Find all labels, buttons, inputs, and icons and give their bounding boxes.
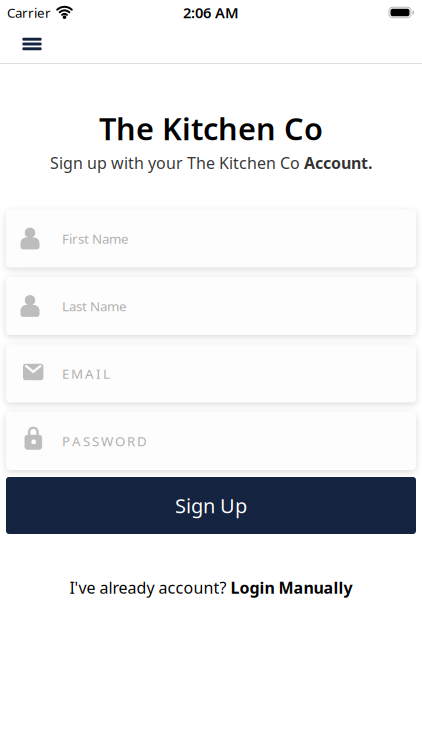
button[interactable]: Sign Up (6, 477, 416, 534)
staticText: Sign Up (175, 492, 247, 519)
staticText: The Kitchen Co (99, 108, 323, 149)
button[interactable]: Menu (17, 31, 47, 57)
staticText: Last Name (62, 297, 127, 315)
staticText: Carrier (7, 4, 51, 21)
staticText: 2:06 AM (183, 3, 239, 22)
button[interactable]: I've already account? Login Manually (69, 577, 352, 598)
staticText: E M A I L (62, 365, 110, 382)
staticText: I've already account? Login Manually (69, 577, 352, 598)
button[interactable]: P A S S W O R D (6, 412, 416, 470)
staticText: Sign up with your The Kitchen Co Account… (50, 152, 372, 173)
button[interactable]: E M A I L (6, 344, 416, 402)
staticText: First Name (62, 230, 129, 247)
button[interactable]: Last Name (6, 277, 416, 335)
staticText: P A S S W O R D (62, 432, 147, 450)
button[interactable]: First Name (6, 209, 416, 267)
